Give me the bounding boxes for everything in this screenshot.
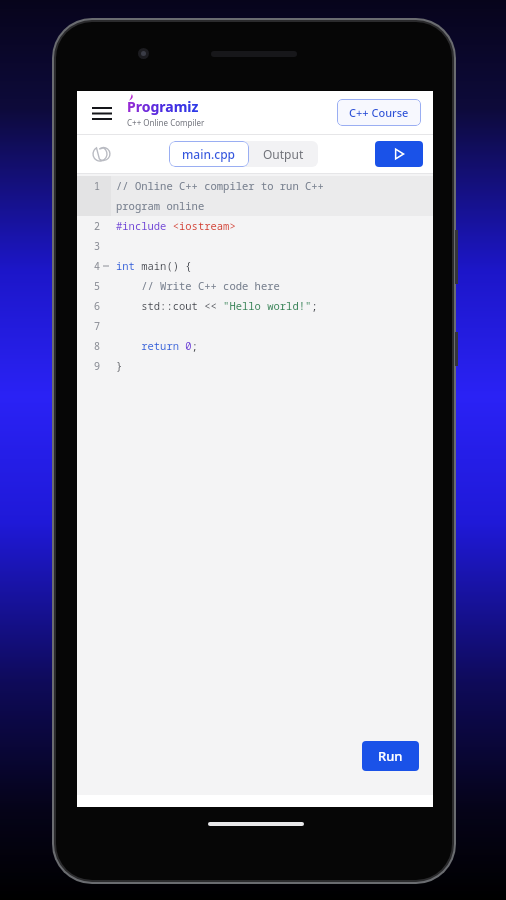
staticText: 7 [94,319,100,333]
staticText: 5 [94,279,100,293]
staticText: program online [116,199,205,213]
staticText: } [116,359,123,373]
staticText: 3 [94,239,100,253]
staticText: C++ Online Compiler [127,117,205,128]
staticText: 1 [94,179,100,193]
button[interactable]: Open navigation menu [89,100,115,126]
button[interactable]: main.cpp [169,141,249,167]
button[interactable]: Run [362,741,419,771]
staticText: std::cout << "Hello world!"; [116,299,318,313]
staticText: 4 [94,259,100,273]
staticText: return 0; [116,339,198,353]
staticText: main.cpp [182,146,236,162]
staticText: Run [378,747,403,765]
staticText: 2 [94,219,100,233]
staticText: // Online C++ compiler to run C++ [116,179,324,193]
staticText: Programiz [127,97,199,116]
staticText: Output [263,146,304,162]
button[interactable]: Output [249,141,318,167]
staticText: 6 [94,299,100,313]
button[interactable]: Run code [375,141,423,167]
staticText: #include <iostream> [116,219,236,233]
staticText: int main() { [116,259,192,273]
staticText: 9 [94,359,100,373]
staticText: // Write C++ code here [116,279,280,293]
button[interactable]: C++ Course [337,99,421,126]
button[interactable]: Toggle dark mode [87,141,113,167]
staticText: C++ Course [349,105,409,120]
staticText: 8 [94,339,100,353]
